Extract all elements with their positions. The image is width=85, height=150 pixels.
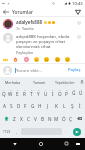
staticText: 9	[59, 88, 61, 91]
staticText: H	[38, 103, 42, 109]
button[interactable]: 8	[49, 87, 56, 98]
button[interactable]: J	[44, 99, 52, 112]
button[interactable]: Like	[75, 33, 82, 40]
button[interactable]: 6	[35, 87, 42, 98]
button[interactable]: Share	[71, 7, 85, 17]
button[interactable]: Hide keyboard	[9, 138, 20, 149]
staticText: D	[17, 103, 21, 109]
staticText: Merhaba	[5, 80, 21, 85]
button[interactable]: Emoji	[32, 55, 40, 63]
button[interactable]: Emoji	[1, 55, 9, 63]
button[interactable]: Backspace	[74, 112, 84, 125]
staticText: W	[8, 91, 13, 97]
staticText: 4	[24, 88, 26, 91]
staticText: Paylaşılan	[16, 50, 34, 55]
button[interactable]: Ş	[68, 99, 76, 112]
button[interactable]: Paylaş	[67, 67, 82, 73]
staticText: 3	[17, 88, 19, 91]
button[interactable]: G	[29, 99, 36, 112]
button[interactable]: Ö	[60, 112, 67, 125]
staticText: Yorum ekle...	[16, 67, 43, 73]
button[interactable]: ,	[13, 125, 21, 138]
button[interactable]: 1	[1, 87, 7, 98]
staticText: 0	[66, 88, 68, 91]
staticText: X	[20, 116, 23, 122]
button[interactable]: Emoji	[22, 55, 30, 63]
staticText: 7s	[16, 26, 20, 31]
button[interactable]: Yorum ekle...	[15, 67, 67, 73]
button[interactable]: Shift	[1, 112, 11, 125]
button[interactable]: M	[53, 112, 60, 125]
staticText: İ	[79, 103, 81, 109]
button[interactable]: Teşekkürler	[52, 77, 78, 87]
staticText: 7	[45, 88, 47, 91]
staticText: S	[10, 103, 13, 109]
staticText: Yorumlar	[12, 9, 34, 16]
button[interactable]: 0	[63, 87, 70, 98]
staticText: 1	[3, 88, 5, 91]
button[interactable]: 5	[28, 87, 35, 98]
button[interactable]: Merhaba	[0, 77, 26, 87]
button[interactable]: F	[22, 99, 29, 112]
button[interactable]: 9	[56, 87, 63, 98]
button[interactable]: Like	[75, 19, 82, 26]
button[interactable]: S	[8, 99, 15, 112]
button[interactable]: Z	[11, 112, 18, 125]
staticText: B	[41, 116, 45, 122]
button[interactable]: Emoji	[11, 55, 19, 63]
staticText: Ç	[69, 116, 72, 122]
button[interactable]: L	[60, 99, 68, 112]
staticText: Y	[37, 91, 40, 97]
staticText: .	[65, 129, 67, 135]
staticText: 6	[38, 88, 40, 91]
staticText: Ü	[79, 90, 83, 96]
staticText: E	[16, 91, 19, 97]
staticText: Z	[13, 116, 16, 122]
staticText: U	[44, 91, 48, 97]
button[interactable]: Ğ	[70, 87, 77, 98]
button[interactable]: Emoji	[42, 55, 50, 63]
button[interactable]: 3	[14, 87, 21, 98]
staticText: A	[3, 103, 6, 109]
button[interactable]: Send	[70, 125, 84, 138]
button[interactable]: ?123	[1, 125, 13, 138]
button[interactable]: 4	[21, 87, 28, 98]
button[interactable]: B	[39, 112, 46, 125]
staticText: Ğ	[72, 90, 76, 96]
button[interactable]: Emoji	[63, 55, 71, 63]
button[interactable]: Recents	[61, 138, 72, 149]
staticText: C	[27, 116, 30, 122]
button[interactable]: Ç	[67, 112, 74, 125]
button[interactable]: 2	[7, 87, 14, 98]
staticText: R	[23, 91, 26, 97]
button[interactable]: K	[52, 99, 60, 112]
staticText: 5	[31, 88, 33, 91]
staticText: G	[31, 103, 35, 109]
staticText: Ş	[71, 103, 74, 109]
staticText: Q	[2, 91, 6, 97]
staticText: Paylaş	[68, 67, 81, 73]
staticText: Teşekkürler	[55, 80, 75, 85]
button[interactable]: X	[18, 112, 25, 125]
button[interactable]: Tamam	[26, 77, 52, 87]
button[interactable]: Home	[35, 138, 46, 149]
button[interactable]: İ	[76, 99, 84, 112]
staticText: Tamam	[33, 80, 46, 85]
staticText: O	[58, 91, 62, 97]
button[interactable]: Change keyboard	[72, 138, 83, 149]
button[interactable]: Emoji	[53, 55, 61, 63]
button[interactable]: D	[15, 99, 22, 112]
button[interactable]: Back	[0, 7, 12, 17]
staticText: V	[34, 116, 37, 122]
button[interactable]: H	[36, 99, 44, 112]
button[interactable]: N	[46, 112, 53, 125]
staticText: adqsd888 hoşardan, ebola poşayın ve poşa…	[16, 33, 73, 49]
button[interactable]: Voice input	[78, 77, 85, 87]
button[interactable]: C	[25, 112, 32, 125]
button[interactable]: Ü	[77, 87, 84, 98]
button[interactable]: V	[32, 112, 39, 125]
button[interactable]: A	[1, 99, 8, 112]
button[interactable]: 7	[42, 87, 49, 98]
